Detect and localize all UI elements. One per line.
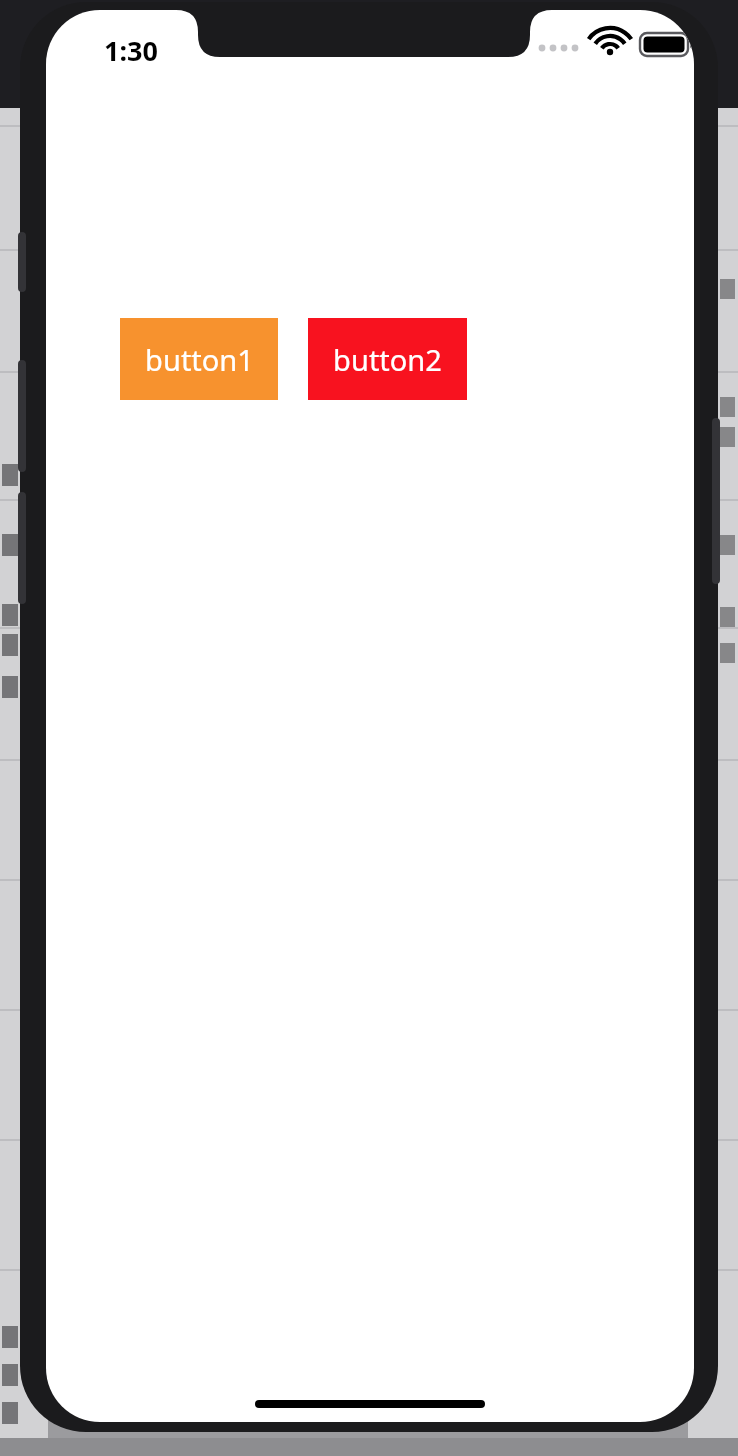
staticText: button1 <box>145 340 254 379</box>
button[interactable]: button1 <box>120 318 278 400</box>
staticText: button2 <box>333 340 442 379</box>
other: Home indicator <box>255 1400 485 1408</box>
staticText: 1:30 <box>104 32 158 69</box>
button[interactable]: button2 <box>308 318 467 400</box>
